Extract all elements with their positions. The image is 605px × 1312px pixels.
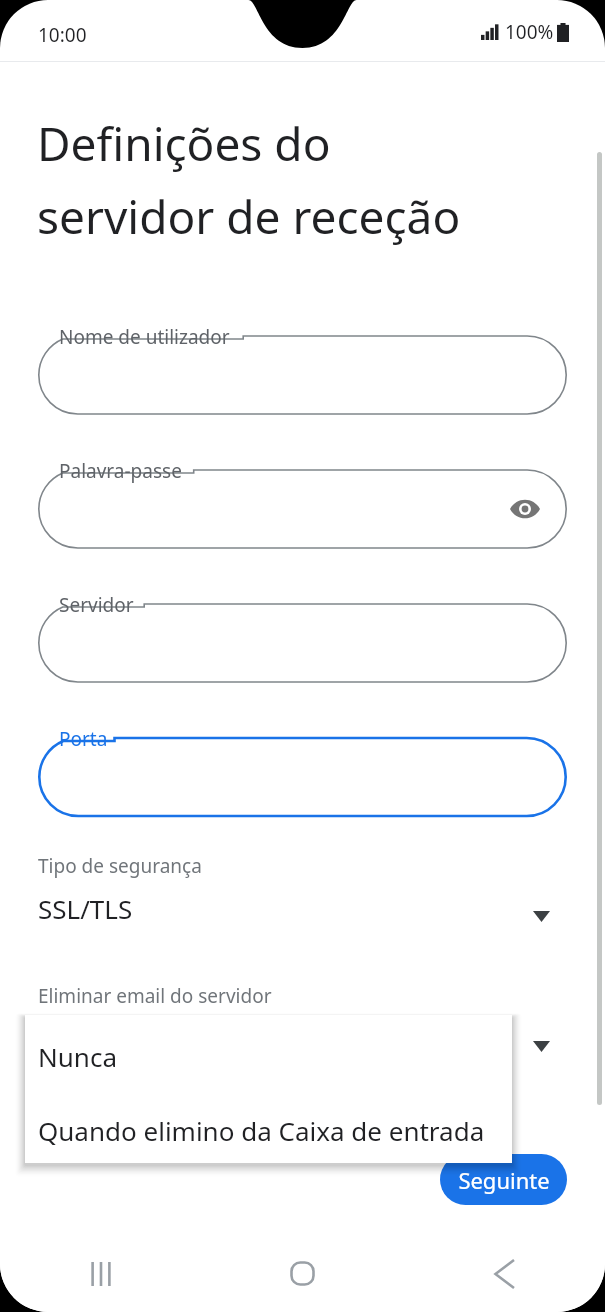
staticText: 10:00 (38, 22, 87, 48)
button[interactable]: Voltar (403, 1235, 605, 1312)
staticText: Porta (59, 726, 108, 752)
button[interactable]: Seguinte (440, 1154, 567, 1205)
button[interactable]: Quando elimino da Caixa de entrada (25, 1089, 512, 1163)
staticText: Eliminar email do servidor (38, 983, 272, 1009)
staticText: Tipo de segurança (38, 853, 202, 879)
button[interactable]: Nome de utilizador (38, 324, 567, 426)
button[interactable]: Mostrar palavra-passe (503, 487, 547, 531)
staticText: Seguinte (458, 1165, 550, 1195)
button[interactable]: Início (201, 1235, 403, 1312)
button[interactable]: Servidor (38, 592, 567, 694)
staticText: Definições do (37, 112, 331, 175)
button[interactable]: Tipo de segurança (0, 853, 605, 939)
staticText: SSL/TLS (38, 891, 133, 926)
staticText: Servidor (59, 592, 134, 618)
staticText: Palavra-passe (59, 458, 182, 484)
staticText: Nunca (38, 1021, 117, 1056)
staticText: Nome de utilizador (59, 324, 230, 350)
staticText: servidor de receção (37, 185, 461, 248)
staticText: Quando elimino da Caixa de entrada (38, 1113, 485, 1148)
staticText: Nunca (38, 1039, 117, 1074)
button[interactable]: Recentes (0, 1235, 201, 1312)
button[interactable]: Eliminar email do servidor (0, 983, 605, 1069)
button[interactable]: Nunca (25, 1015, 512, 1089)
staticText: 100% (505, 19, 554, 45)
button[interactable]: Porta (38, 726, 567, 828)
button[interactable]: Palavra-passe (38, 458, 567, 560)
